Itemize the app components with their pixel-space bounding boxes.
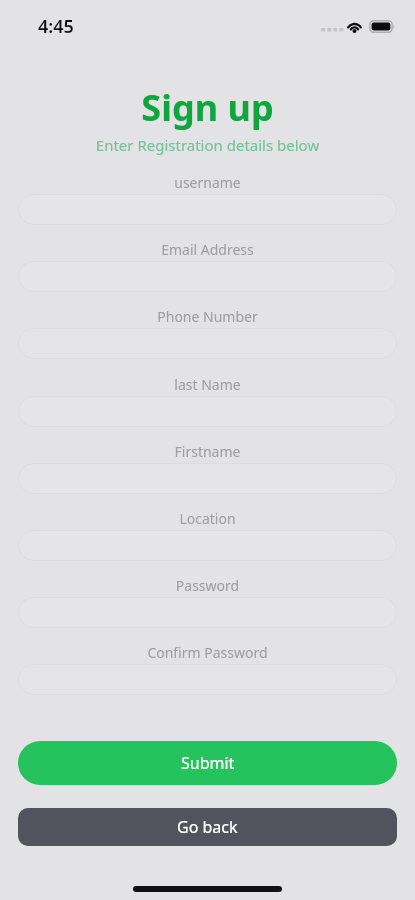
button[interactable]: Submit	[18, 741, 397, 785]
staticText: Go back	[177, 816, 238, 838]
other: Wi-Fi	[346, 19, 363, 32]
staticText: Enter Registration details below	[0, 135, 415, 155]
other: Battery full	[369, 20, 395, 33]
staticText: Location	[0, 509, 415, 528]
staticText: Email Address	[0, 240, 415, 259]
staticText: Password	[0, 576, 415, 595]
staticText: username	[0, 173, 415, 192]
other: Cellular signal	[321, 28, 340, 32]
staticText: 4:45	[38, 14, 74, 39]
staticText: Sign up	[0, 83, 415, 132]
staticText: Confirm Password	[0, 643, 415, 662]
button[interactable]: Go back	[18, 808, 397, 846]
staticText: Submit	[181, 752, 235, 774]
staticText: last Name	[0, 375, 415, 394]
staticText: Firstname	[0, 442, 415, 461]
staticText: Phone Number	[0, 307, 415, 326]
